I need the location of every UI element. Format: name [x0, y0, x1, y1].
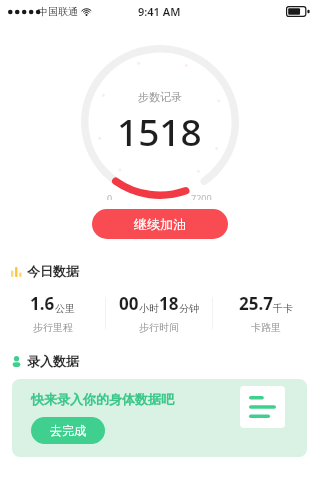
button[interactable]: 去完成 [31, 417, 105, 444]
staticText: 去完成 [50, 423, 86, 438]
staticText: 1518 [117, 106, 202, 156]
button[interactable]: 继续加油 [92, 209, 228, 239]
staticText: 步行里程 [33, 321, 73, 334]
staticText: 7200 [191, 192, 212, 200]
staticText: 步行时间 [139, 321, 179, 334]
staticText: 分钟 [179, 302, 199, 315]
staticText: 0 [107, 192, 113, 200]
staticText: 中国联通 [38, 5, 78, 18]
staticText: 18 [159, 292, 179, 315]
staticText: 千卡 [273, 302, 293, 315]
staticText: 快来录入你的身体数据吧 [31, 391, 174, 407]
button[interactable]: 00 [106, 292, 212, 334]
staticText: 继续加油 [134, 216, 186, 232]
staticText: 9:41 AM [138, 4, 181, 19]
staticText: 步数记录 [138, 90, 182, 104]
button[interactable]: 快来录入你的身体数据吧 [12, 379, 307, 457]
staticText: 00 [119, 292, 139, 315]
staticText: 卡路里 [251, 321, 281, 334]
staticText: 小时 [139, 302, 159, 315]
staticText: 公里 [55, 302, 75, 315]
staticText: 25.7 [239, 292, 273, 315]
button[interactable]: 1.6 [0, 292, 105, 334]
button[interactable]: 25.7 [213, 292, 319, 334]
staticText: 录入数据 [27, 353, 79, 369]
staticText: 今日数据 [27, 263, 79, 279]
other: 身体数据 [240, 386, 285, 428]
staticText: 1.6 [30, 292, 55, 315]
